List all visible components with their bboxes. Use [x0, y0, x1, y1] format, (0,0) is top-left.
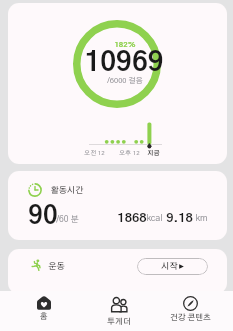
staticText: 오전 12	[84, 150, 105, 156]
staticText: 지금	[147, 150, 160, 156]
staticText: 활동시간	[50, 186, 84, 195]
staticText: 오후 12	[119, 150, 140, 156]
staticText: 시작	[161, 262, 178, 271]
staticText: /6000 걸음	[107, 77, 143, 85]
button[interactable]: 시작	[137, 258, 208, 275]
staticText: /60 분	[56, 215, 79, 224]
staticText: 운동	[48, 262, 65, 271]
staticText: 투게더	[107, 318, 131, 326]
button[interactable]: 투게더	[83, 291, 155, 331]
staticText: 90	[28, 204, 58, 229]
button[interactable]: 건강 콘텐츠	[154, 291, 226, 331]
button[interactable]: 홈	[8, 291, 80, 331]
button[interactable]: 182%	[8, 3, 227, 164]
staticText: 건강 콘텐츠	[170, 314, 211, 322]
staticText: 9.18	[166, 212, 193, 225]
staticText: 홈	[40, 313, 48, 321]
staticText: 182%	[114, 41, 136, 49]
staticText: 1868	[117, 212, 147, 225]
staticText: kcal	[146, 214, 163, 223]
button[interactable]: 활동시간	[8, 171, 227, 240]
staticText: km	[195, 214, 208, 223]
staticText: 10969	[84, 49, 164, 76]
